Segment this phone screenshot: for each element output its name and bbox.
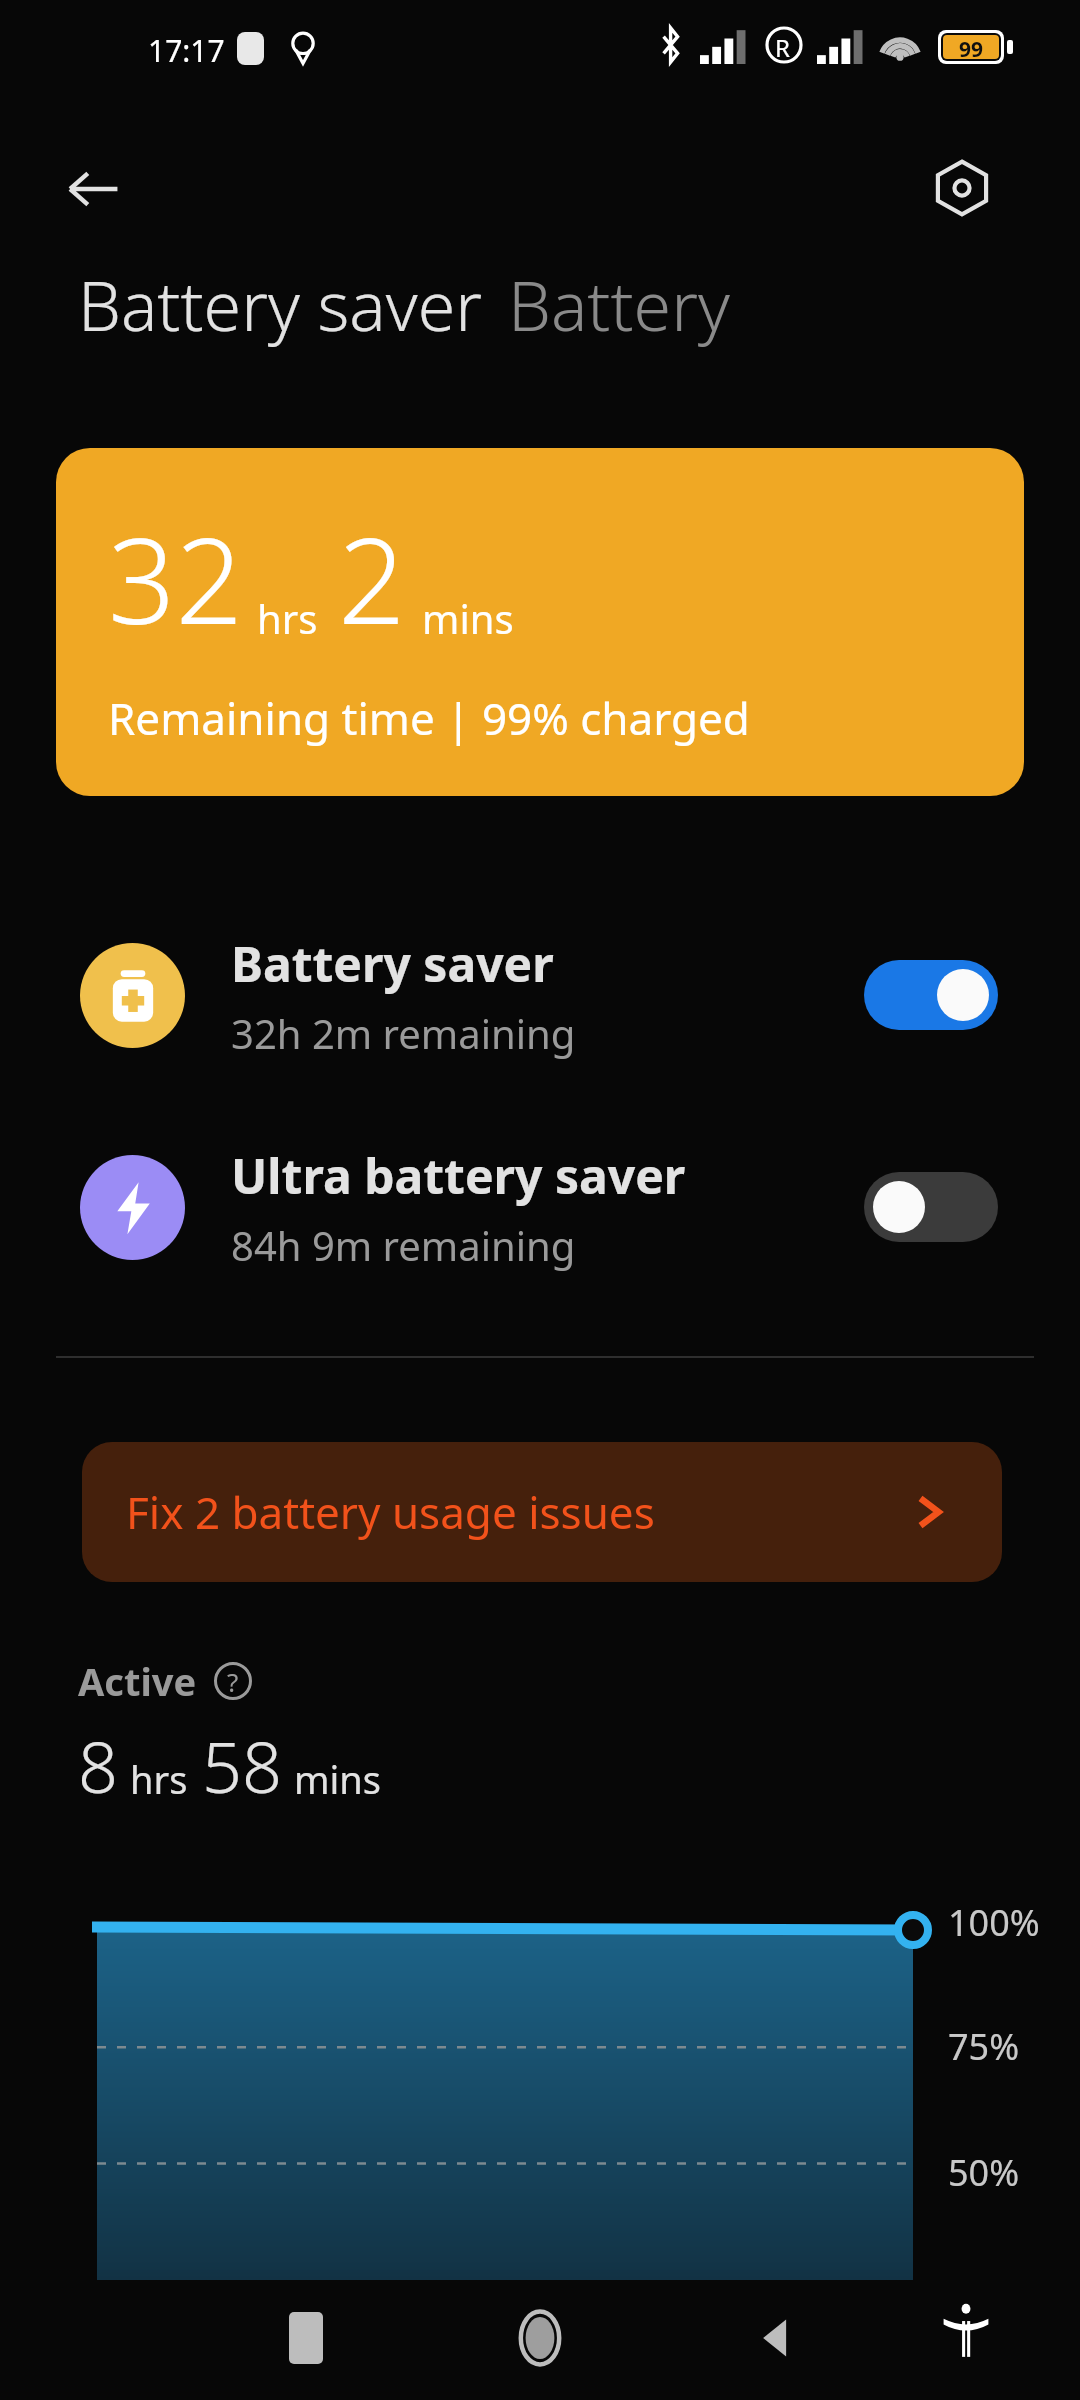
button[interactable]: Settings (912, 138, 1012, 238)
staticText: 8 (78, 1718, 118, 1813)
staticText: mins (294, 1753, 382, 1805)
button[interactable]: Back (728, 2290, 824, 2386)
button[interactable]: Fix 2 battery usage issues (82, 1442, 1002, 1582)
staticText: Remaining time | 99% charged (108, 688, 750, 748)
button[interactable]: Battery saver (56, 900, 1024, 1090)
staticText: 32 (108, 498, 243, 659)
staticText: ? (227, 1664, 239, 1699)
button[interactable]: Back (48, 144, 138, 234)
staticText: R (775, 31, 790, 64)
staticText: Ultra battery saver (231, 1143, 686, 1208)
button[interactable]: Ultra battery saver (56, 1112, 1024, 1302)
button[interactable]: Battery (508, 258, 730, 351)
staticText: 100% (948, 1898, 1040, 1947)
button[interactable]: Battery saver on (864, 960, 998, 1030)
button[interactable]: 32 (56, 448, 1024, 796)
staticText: Active (78, 1655, 197, 1707)
staticText: Battery saver (231, 931, 554, 996)
button[interactable]: Home (492, 2290, 588, 2386)
staticText: Battery saver (78, 258, 482, 351)
staticText: 32h 2m remaining (231, 1006, 576, 1060)
staticText: 58 (202, 1718, 282, 1813)
staticText: 99 (959, 35, 984, 59)
button[interactable]: Recent apps (258, 2290, 354, 2386)
staticText: Battery (508, 258, 730, 351)
staticText: hrs (257, 591, 318, 645)
button[interactable]: Ultra battery saver off (864, 1172, 998, 1242)
button[interactable]: Battery saver (78, 258, 482, 351)
staticText: Fix 2 battery usage issues (126, 1482, 655, 1542)
staticText: 50% (948, 2148, 1020, 2197)
button[interactable]: Accessibility (918, 2282, 1014, 2378)
staticText: hrs (130, 1753, 188, 1805)
staticText: 84h 9m remaining (231, 1218, 576, 1272)
button[interactable]: Help about active time (211, 1659, 255, 1703)
staticText: 2 (338, 498, 406, 659)
staticText: 17:17 (148, 30, 225, 71)
staticText: 75% (948, 2022, 1020, 2071)
staticText: mins (422, 591, 514, 645)
